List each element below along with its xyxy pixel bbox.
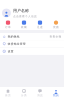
button[interactable]: 分类 <box>16 89 32 97</box>
staticText: 查看余额 <box>49 35 61 38</box>
button[interactable]: 订单 <box>0 20 16 29</box>
staticText: 点击查看个人信息 <box>13 15 37 18</box>
button[interactable]: 首页 <box>0 89 16 97</box>
staticText: 订单 <box>5 25 11 29</box>
button[interactable]: 用户名称 <box>0 9 64 17</box>
staticText: 首页 <box>5 94 11 97</box>
button[interactable]: 优惠 <box>48 20 64 29</box>
staticText: 我的钱包 <box>8 35 20 38</box>
button[interactable]: 消息 <box>32 89 48 97</box>
staticText: 消息 <box>37 94 43 97</box>
staticText: 分类 <box>21 94 27 97</box>
button[interactable]: 收藏 <box>16 20 32 29</box>
staticText: 收货地址管理 <box>8 42 26 46</box>
button[interactable]: 我的 <box>48 89 64 97</box>
staticText: 足迹 <box>37 25 43 29</box>
button[interactable]: 设置 <box>0 48 64 55</box>
button[interactable]: 收货地址管理 <box>0 40 64 47</box>
staticText: 用户名称 <box>13 8 29 13</box>
staticText: 我的 <box>53 94 59 97</box>
button[interactable]: 足迹 <box>32 20 48 29</box>
staticText: 设置 <box>8 50 14 53</box>
staticText: 收藏 <box>21 25 27 29</box>
staticText: 优惠 <box>53 25 59 29</box>
button[interactable]: 我的钱包 <box>0 33 64 40</box>
